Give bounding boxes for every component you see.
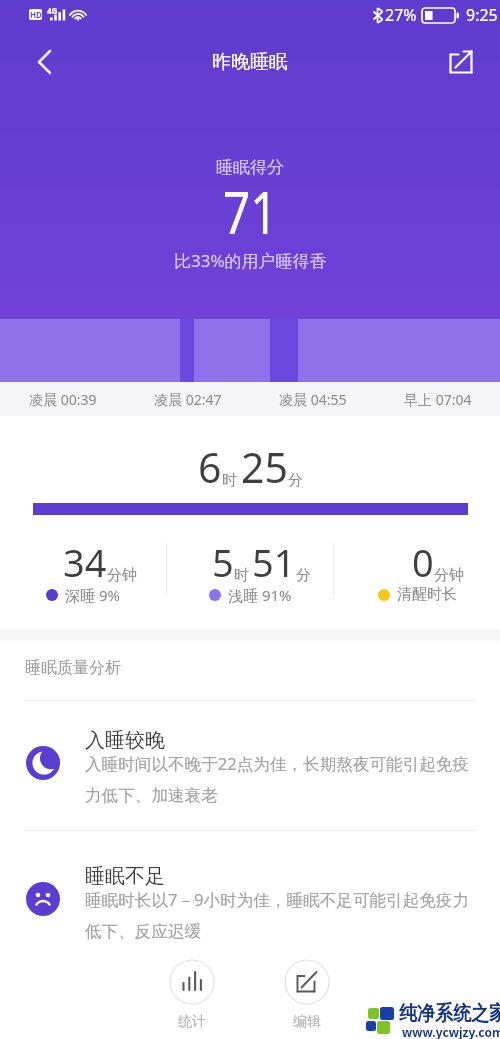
button[interactable]: 编辑 — [284, 959, 330, 1031]
staticText: 分 — [296, 566, 311, 585]
button[interactable]: Share — [442, 43, 480, 81]
staticText: 纯净系统之家 — [399, 1001, 500, 1026]
staticText: 凌晨 04:55 — [279, 390, 347, 409]
staticText: 凌晨 00:39 — [29, 390, 97, 409]
button[interactable]: Back — [22, 42, 62, 82]
staticText: 6 — [198, 439, 222, 495]
staticText: 分钟 — [434, 566, 464, 585]
staticText: 比33%的用户睡得香 — [174, 249, 327, 272]
button[interactable]: 统计 — [169, 959, 215, 1031]
staticText: www.ycwjzy.com — [402, 1024, 500, 1039]
staticText: 入睡时间以不晚于22点为佳，长期熬夜可能引起免疫 力低下、加速衰老 — [85, 752, 470, 806]
staticText: 9:25 — [466, 4, 498, 26]
staticText: 统计 — [178, 1013, 206, 1031]
staticText: 睡眠时长以7－9小时为佳，睡眠不足可能引起免疫力 低下、反应迟缓 — [85, 888, 470, 942]
staticText: 分钟 — [107, 566, 137, 585]
staticText: 4G — [47, 5, 58, 16]
staticText: 凌晨 02:47 — [154, 390, 222, 409]
staticText: 时 — [234, 566, 249, 585]
staticText: 睡眠不足 — [85, 864, 165, 889]
staticText: 51 — [252, 536, 296, 588]
staticText: 分 — [288, 471, 303, 490]
staticText: 浅睡 91% — [228, 585, 292, 605]
staticText: 睡眠质量分析 — [25, 658, 121, 678]
staticText: 入睡较晚 — [85, 728, 165, 753]
staticText: 编辑 — [293, 1013, 321, 1031]
staticText: 清醒时长 — [397, 585, 457, 604]
staticText: 睡眠得分 — [216, 157, 284, 178]
staticText: 深睡 9% — [65, 585, 120, 605]
staticText: 5 — [212, 536, 234, 588]
button[interactable]: 睡眠不足 — [0, 837, 500, 967]
staticText: 早上 07:04 — [404, 390, 472, 409]
button[interactable]: 入睡较晚 — [0, 701, 500, 831]
staticText: HD — [30, 9, 42, 20]
staticText: 0 — [412, 536, 434, 588]
staticText: 25 — [241, 439, 288, 495]
staticText: 71 — [223, 172, 278, 251]
staticText: 34 — [63, 536, 107, 588]
staticText: 27% — [385, 4, 417, 26]
staticText: 时 — [222, 471, 237, 490]
staticText: 昨晚睡眠 — [212, 50, 288, 74]
